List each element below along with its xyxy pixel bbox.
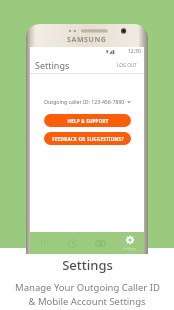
- staticText: Settings: [35, 59, 70, 71]
- button[interactable]: Settings: [115, 232, 144, 254]
- button[interactable]: LOG OUT: [115, 60, 139, 70]
- staticText: SAMSUNG: [67, 35, 107, 45]
- staticText: Settings: [123, 246, 136, 251]
- staticText: Manage Your Outgoing Caller ID: [15, 281, 160, 294]
- staticText: 12:30: [128, 48, 141, 55]
- button[interactable]: Voicemail: [86, 232, 115, 254]
- staticText: FEEDBACK OR SUGGESTIONS?: [52, 136, 124, 142]
- staticText: HELP & SUPPORT: [67, 118, 109, 124]
- button[interactable]: HELP & SUPPORT: [44, 114, 131, 127]
- staticText: Outgoing caller ID: 123-456-7890: [44, 98, 125, 105]
- staticText: & Mobile Account Settings: [28, 295, 146, 308]
- button[interactable]: Outgoing caller ID: 123-456-7890: [40, 96, 135, 107]
- button[interactable]: FEEDBACK OR SUGGESTIONS?: [44, 132, 131, 145]
- staticText: LOG OUT: [117, 62, 137, 68]
- staticText: Settings: [62, 256, 113, 274]
